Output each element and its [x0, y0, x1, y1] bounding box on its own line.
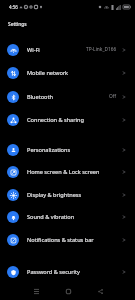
button[interactable]: Connection & sharing [0, 108, 135, 131]
button[interactable]: Share [91, 282, 109, 300]
button[interactable]: Password & security [0, 260, 135, 283]
staticText: Bluetooth [27, 93, 53, 101]
button[interactable]: Wi-Fi [0, 38, 135, 61]
button[interactable]: Mobile network [0, 61, 135, 84]
button[interactable]: Notifications & status bar [0, 228, 135, 251]
staticText: Home screen & Lock screen [27, 168, 100, 176]
staticText: Password & security [27, 268, 80, 276]
staticText: Connection & sharing [27, 116, 84, 124]
button[interactable]: Home screen & Lock screen [0, 160, 135, 183]
staticText: Personalizations [27, 146, 71, 154]
staticText: Display & brightness [27, 191, 82, 199]
button[interactable]: Recent apps [27, 282, 45, 300]
button[interactable]: Home [59, 282, 77, 300]
staticText: Notifications & status bar [27, 236, 94, 244]
staticText: 4:56 [9, 4, 18, 10]
staticText: TP-Link_D166 [86, 46, 117, 53]
staticText: Wi-Fi [27, 46, 40, 54]
button[interactable]: Bluetooth [0, 85, 135, 108]
staticText: Off [109, 93, 117, 100]
staticText: Sound & vibration [27, 213, 75, 221]
button[interactable]: Display & brightness [0, 183, 135, 206]
button[interactable]: Sound & vibration [0, 205, 135, 228]
button[interactable]: Personalizations [0, 138, 135, 161]
staticText: Mobile network [27, 69, 69, 77]
staticText: Settings [8, 21, 27, 28]
